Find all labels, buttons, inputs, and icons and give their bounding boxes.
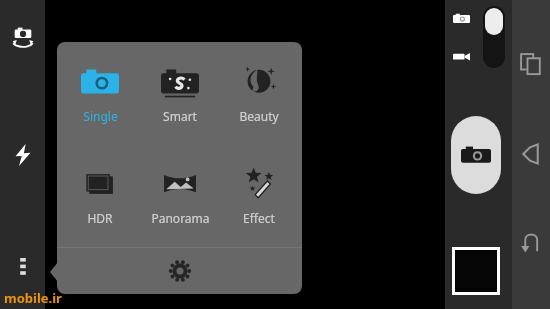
button[interactable]: More options (6, 249, 40, 283)
button[interactable]: Flash (6, 138, 40, 172)
staticText: mobile.ir (4, 289, 62, 307)
button[interactable]: Panorama (143, 161, 217, 230)
button[interactable]: HDR (63, 161, 137, 230)
button[interactable]: Back (512, 223, 550, 261)
button[interactable]: Shutter (451, 116, 501, 194)
button[interactable]: Home (512, 135, 550, 173)
button[interactable]: Single (63, 59, 137, 128)
button[interactable]: Effect (222, 161, 296, 230)
staticText: Panorama (151, 210, 210, 226)
button[interactable]: Smart (143, 59, 217, 128)
staticText: Effect (243, 210, 275, 226)
button[interactable]: Recents (512, 45, 550, 83)
staticText: HDR (87, 210, 113, 226)
staticText: Smart (163, 108, 197, 124)
button[interactable]: Settings (160, 251, 200, 291)
button[interactable]: Beauty (222, 59, 296, 128)
button[interactable]: Switch camera (6, 20, 40, 54)
staticText: Beauty (239, 108, 279, 124)
button[interactable]: Photo video mode (483, 6, 505, 68)
staticText: Single (83, 108, 118, 124)
